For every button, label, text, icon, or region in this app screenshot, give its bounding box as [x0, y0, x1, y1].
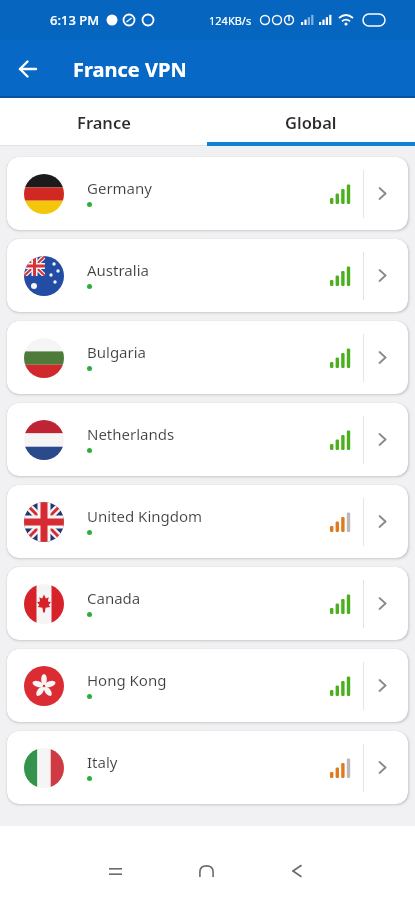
button[interactable] — [277, 851, 317, 891]
staticText: Bulgaria — [87, 342, 147, 362]
staticText: United Kingdom — [87, 506, 203, 526]
staticText: Global — [285, 111, 337, 133]
staticText: Hong Kong — [87, 670, 167, 690]
button[interactable]: Germany — [7, 157, 408, 230]
staticText: France VPN — [73, 56, 187, 83]
button[interactable]: Bulgaria — [7, 321, 408, 394]
button[interactable] — [95, 851, 135, 891]
staticText: Italy — [87, 752, 118, 772]
button[interactable]: United Kingdom — [7, 485, 408, 558]
staticText: France — [77, 111, 131, 133]
button[interactable]: Italy — [7, 731, 408, 804]
staticText: Australia — [87, 260, 149, 280]
staticText: 124KB/s — [209, 13, 252, 28]
staticText: Netherlands — [87, 424, 175, 444]
button[interactable]: Australia — [7, 239, 408, 312]
button[interactable] — [0, 41, 56, 97]
staticText: Germany — [87, 178, 152, 198]
button[interactable] — [186, 851, 226, 891]
button[interactable]: France — [0, 98, 207, 146]
button[interactable]: Netherlands — [7, 403, 408, 476]
staticText: Canada — [87, 588, 141, 608]
button[interactable]: Global — [207, 98, 415, 146]
button[interactable]: Hong Kong — [7, 649, 408, 722]
staticText: 6:13 PM — [50, 11, 100, 29]
button[interactable]: Canada — [7, 567, 408, 640]
